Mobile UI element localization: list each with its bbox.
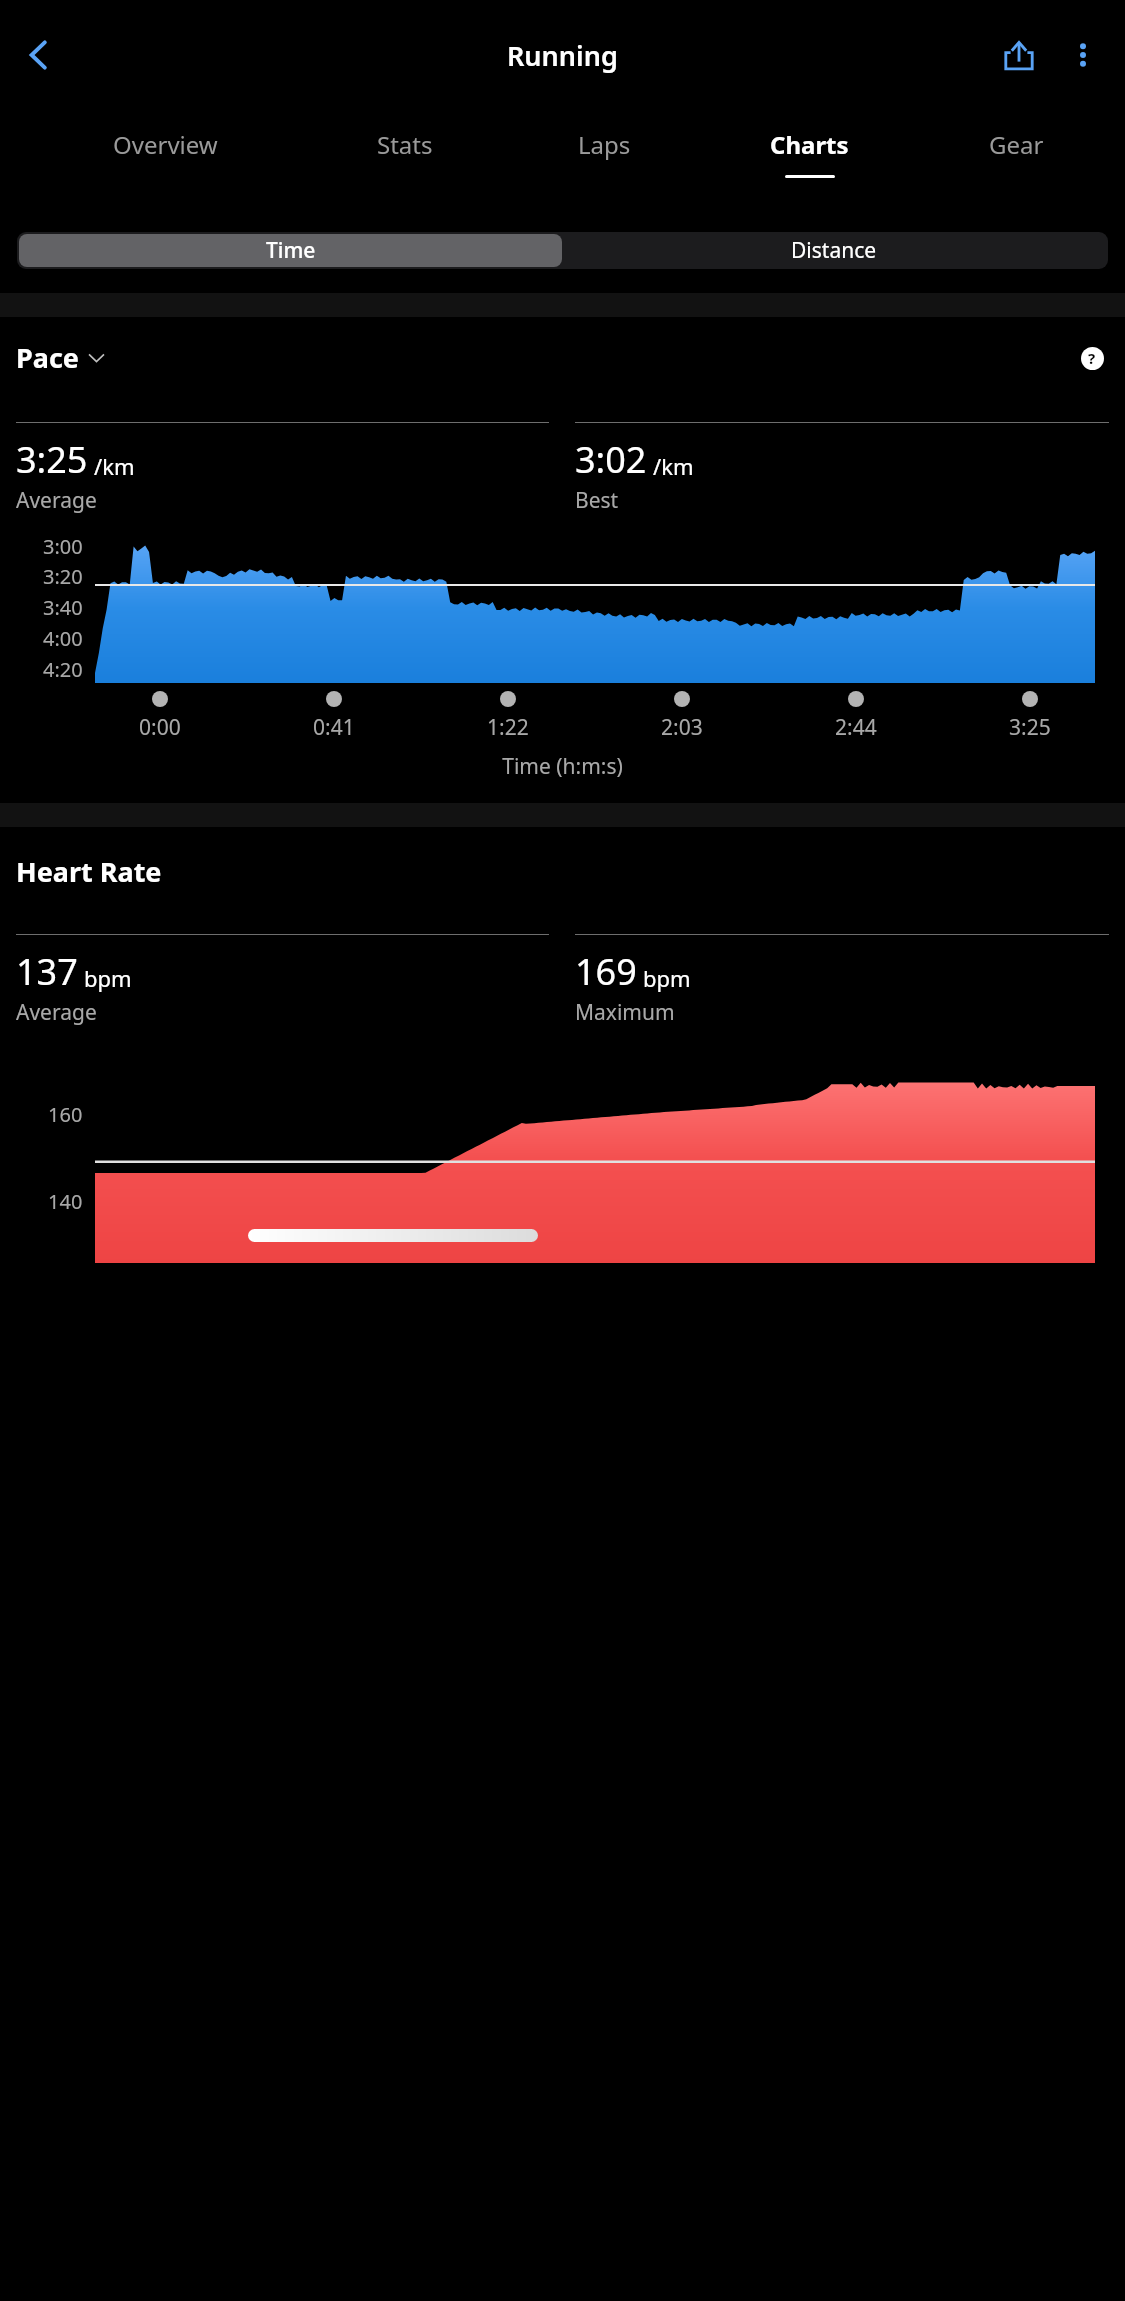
staticText: Heart Rate <box>16 853 162 890</box>
button[interactable]: Help <box>1075 341 1109 375</box>
staticText: 4:00 <box>43 625 83 652</box>
staticText: bpm <box>84 963 132 993</box>
button[interactable]: Gear <box>918 110 1115 210</box>
staticText: 3:40 <box>43 594 83 621</box>
staticText: Maximum <box>575 998 675 1027</box>
staticText: 160 <box>48 1101 83 1128</box>
staticText: Average <box>16 486 97 515</box>
staticText: Running <box>507 37 618 74</box>
staticText: 137 <box>16 947 78 996</box>
staticText: Overview <box>113 128 218 161</box>
staticText: Time <box>266 236 316 265</box>
staticText: 3:20 <box>43 563 83 590</box>
staticText: Time (h:m:s) <box>0 752 1125 781</box>
staticText: 3:00 <box>43 533 83 560</box>
staticText: 2:03 <box>661 713 703 742</box>
staticText: ? <box>1088 348 1096 368</box>
button[interactable]: Share <box>987 23 1051 87</box>
button[interactable]: Pace <box>16 339 105 376</box>
button[interactable]: Distance <box>562 234 1106 267</box>
staticText: /km <box>94 451 135 481</box>
staticText: Pace <box>16 339 79 376</box>
button[interactable]: Time <box>19 234 562 267</box>
button[interactable]: Charts <box>700 110 918 210</box>
staticText: 3:25 <box>1009 713 1051 742</box>
button[interactable]: More options <box>1051 23 1115 87</box>
staticText: 4:20 <box>43 656 83 683</box>
button[interactable]: Laps <box>509 110 700 210</box>
staticText: 0:41 <box>313 713 355 742</box>
staticText: 3:02 <box>575 435 647 484</box>
staticText: Average <box>16 998 97 1027</box>
staticText: 3:25 <box>16 435 88 484</box>
staticText: /km <box>653 451 694 481</box>
staticText: 169 <box>575 947 637 996</box>
staticText: Stats <box>377 128 433 161</box>
staticText: 2:44 <box>835 713 877 742</box>
staticText: Laps <box>578 128 631 161</box>
staticText: Best <box>575 486 619 515</box>
staticText: Distance <box>791 236 877 265</box>
staticText: bpm <box>643 963 691 993</box>
staticText: Gear <box>989 128 1044 161</box>
staticText: 0:00 <box>139 713 181 742</box>
button[interactable]: Stats <box>301 110 509 210</box>
button[interactable]: Back <box>8 23 72 87</box>
staticText: 1:22 <box>487 713 529 742</box>
staticText: 140 <box>48 1188 83 1215</box>
staticText: Charts <box>770 128 849 161</box>
button[interactable]: Overview <box>30 110 301 210</box>
